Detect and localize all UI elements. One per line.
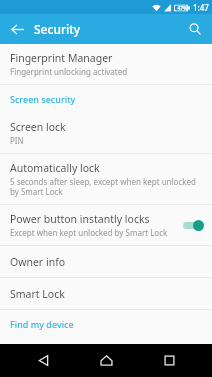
staticText: Owner info xyxy=(10,255,66,269)
staticText: Screen security xyxy=(10,93,76,105)
staticText: 5 seconds after sleep, except when kept … xyxy=(10,176,202,197)
staticText: Screen lock xyxy=(10,120,66,134)
button[interactable]: Screen lock xyxy=(0,113,212,153)
button[interactable]: Smart Lock xyxy=(0,278,212,309)
staticText: Fingerprint Manager xyxy=(10,51,113,65)
staticText: PIN xyxy=(10,135,24,146)
staticText: Smart Lock xyxy=(10,287,65,301)
button[interactable]: Owner info xyxy=(0,246,212,277)
staticText: Fingerprint unlocking activated xyxy=(10,66,128,77)
button[interactable]: Recent apps xyxy=(149,344,189,377)
button[interactable]: Search xyxy=(182,16,208,42)
button[interactable]: Home xyxy=(86,344,126,377)
button[interactable]: Back xyxy=(23,344,63,377)
staticText: Security xyxy=(34,21,81,37)
button[interactable]: Power button instantly locks xyxy=(0,205,212,245)
staticText: Except when kept unlocked by Smart Lock xyxy=(10,227,168,238)
staticText: 1:47 xyxy=(193,2,209,13)
button[interactable]: Fingerprint Manager xyxy=(0,44,212,84)
staticText: Automatically lock xyxy=(10,161,100,175)
button[interactable]: Screen security xyxy=(0,85,212,113)
staticText: 47% xyxy=(177,5,188,12)
staticText: Power button instantly locks xyxy=(10,212,150,226)
staticText: Find my device xyxy=(10,318,74,330)
button[interactable]: Find my device xyxy=(0,310,212,338)
other: Power button instantly locks toggle xyxy=(182,218,204,232)
button[interactable]: Automatically lock xyxy=(0,154,212,204)
button[interactable]: Back xyxy=(4,16,30,42)
